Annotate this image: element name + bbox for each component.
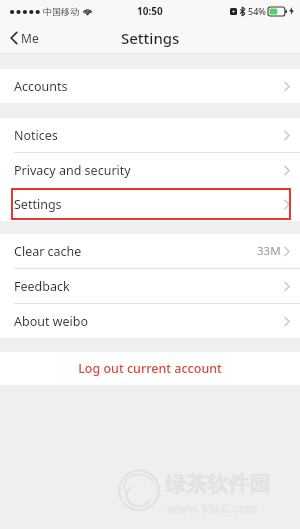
staticText: Feedback	[14, 278, 70, 295]
staticText: 绿茶软件园	[165, 471, 270, 497]
button[interactable]: Log out current account	[0, 352, 300, 385]
button[interactable]: Notices	[0, 118, 300, 152]
staticText: Accounts	[14, 78, 68, 95]
staticText: 中国移动	[43, 6, 79, 17]
staticText: Settings	[121, 28, 180, 48]
button[interactable]: Me	[0, 26, 47, 50]
button[interactable]: Settings	[0, 187, 300, 221]
staticText: Log out current account	[78, 360, 222, 377]
staticText: Privacy and security	[14, 162, 131, 179]
staticText: Notices	[14, 127, 58, 144]
staticText: Settings	[14, 196, 62, 213]
button[interactable]: About weibo	[0, 304, 300, 338]
staticText: 54%	[248, 5, 266, 17]
staticText: Clear cache	[14, 243, 82, 260]
staticText: 33M	[257, 243, 281, 259]
staticText: Me	[21, 30, 39, 46]
staticText: www.33LC.com	[167, 500, 258, 516]
button[interactable]: Clear cache	[0, 234, 300, 268]
staticText: 10:50	[137, 4, 163, 18]
button[interactable]: Feedback	[0, 269, 300, 303]
staticText: About weibo	[14, 313, 89, 330]
button[interactable]: Accounts	[0, 69, 300, 103]
button[interactable]: Privacy and security	[0, 153, 300, 187]
